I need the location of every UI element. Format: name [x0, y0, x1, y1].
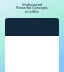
staticText: Understand Powerful Concepts in a Min	[16, 2, 48, 14]
